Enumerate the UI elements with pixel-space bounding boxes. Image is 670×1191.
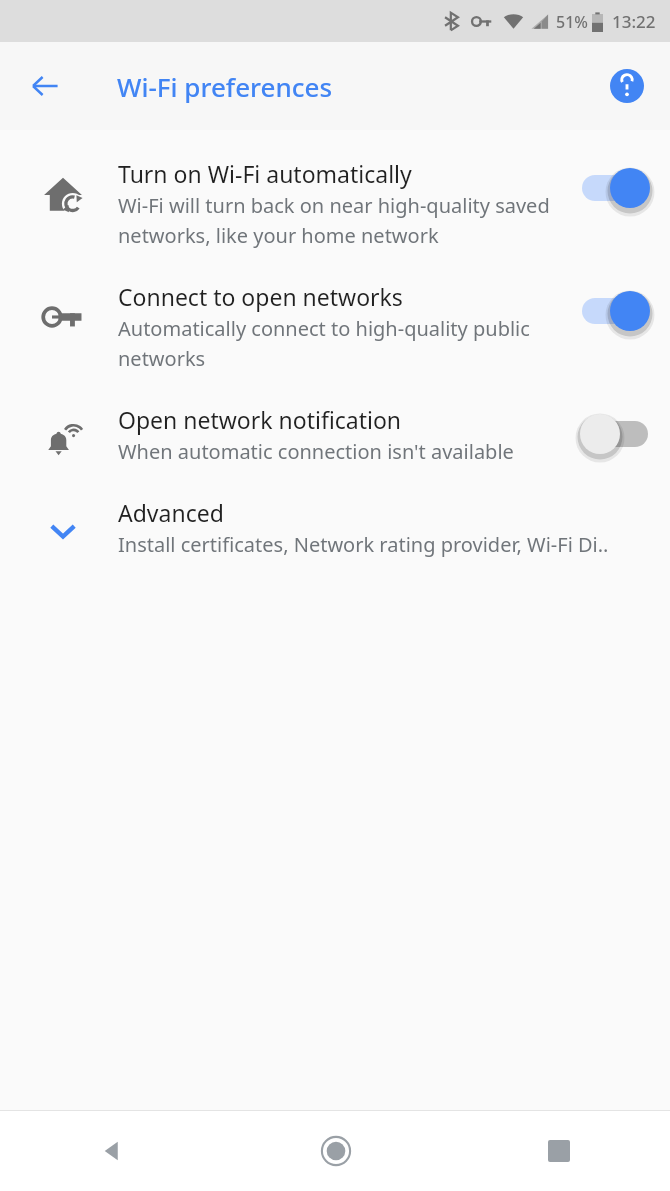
staticText: Wi-Fi preferences bbox=[117, 69, 333, 104]
staticText: Open network notification bbox=[118, 404, 402, 435]
button[interactable]: Turn on Wi-Fi automatically bbox=[0, 142, 670, 265]
button[interactable]: Toggle on bbox=[578, 289, 652, 333]
button[interactable]: Help bbox=[598, 57, 656, 115]
staticText: Automatically connect to high-quality pu… bbox=[118, 315, 568, 372]
button[interactable]: Back bbox=[14, 55, 76, 117]
staticText: Connect to open networks bbox=[118, 281, 403, 312]
staticText: When automatic connection isn't availabl… bbox=[118, 438, 514, 465]
button[interactable]: Back bbox=[0, 1111, 224, 1191]
button[interactable]: Connect to open networks bbox=[0, 265, 670, 388]
staticText: Advanced bbox=[118, 497, 224, 528]
staticText: Turn on Wi-Fi automatically bbox=[118, 158, 412, 189]
button[interactable]: Toggle on bbox=[578, 166, 652, 210]
button[interactable]: Advanced bbox=[0, 481, 670, 574]
staticText: Wi-Fi will turn back on near high-qualit… bbox=[118, 192, 568, 249]
staticText: 51% bbox=[556, 11, 588, 33]
button[interactable]: Recent apps bbox=[447, 1111, 670, 1191]
staticText: Install certificates, Network rating pro… bbox=[118, 531, 609, 558]
button[interactable]: Home bbox=[224, 1111, 447, 1191]
button[interactable]: Open network notification bbox=[0, 388, 670, 481]
staticText: 13:22 bbox=[612, 10, 656, 33]
button[interactable]: Toggle off bbox=[578, 412, 652, 456]
